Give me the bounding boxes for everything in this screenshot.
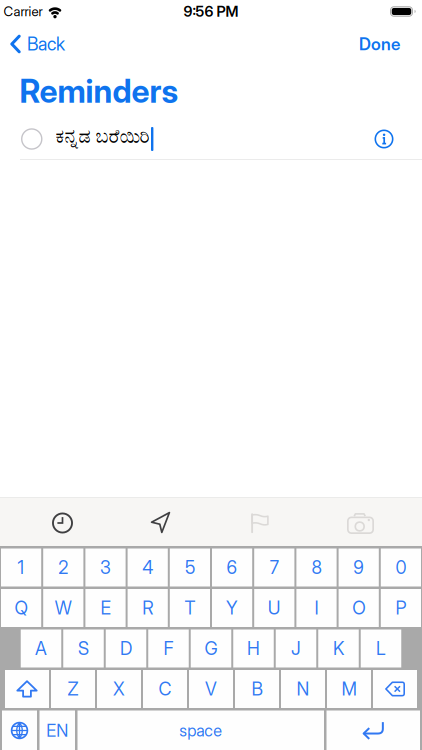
staticText: U: [268, 597, 281, 618]
staticText: C: [158, 678, 171, 699]
button[interactable]: 2: [43, 548, 83, 586]
staticText: B: [251, 678, 262, 699]
button[interactable]: Back: [10, 33, 65, 54]
button[interactable]: [5, 670, 49, 708]
button[interactable]: [52, 512, 73, 533]
staticText: space: [179, 721, 222, 740]
button[interactable]: [2, 710, 37, 750]
staticText: 3: [100, 557, 111, 578]
staticText: I: [314, 597, 318, 618]
staticText: S: [78, 638, 89, 659]
button[interactable]: [150, 511, 172, 534]
button[interactable]: R: [128, 589, 168, 627]
staticText: T: [184, 597, 195, 618]
button[interactable]: 1: [1, 548, 41, 586]
button[interactable]: V: [189, 670, 233, 708]
staticText: 9:56 PM: [183, 3, 238, 20]
staticText: W: [55, 597, 72, 618]
button[interactable]: Done: [359, 34, 400, 54]
staticText: N: [296, 678, 309, 699]
staticText: A: [35, 638, 47, 659]
staticText: Done: [359, 34, 400, 54]
button[interactable]: 6: [212, 548, 252, 586]
button[interactable]: I: [296, 589, 337, 627]
staticText: M: [341, 678, 356, 699]
staticText: P: [395, 597, 406, 618]
staticText: Y: [226, 597, 238, 618]
staticText: Carrier: [3, 4, 42, 19]
button[interactable]: O: [339, 589, 379, 627]
button[interactable]: H: [233, 629, 274, 667]
staticText: Back: [27, 33, 65, 54]
staticText: H: [247, 638, 260, 659]
staticText: J: [291, 638, 301, 659]
button[interactable]: Y: [212, 589, 252, 627]
button[interactable]: X: [97, 670, 141, 708]
button[interactable]: J: [276, 629, 316, 667]
staticText: D: [120, 638, 132, 659]
button[interactable]: 3: [85, 548, 126, 586]
button[interactable]: [249, 512, 269, 534]
button[interactable]: M: [327, 670, 371, 708]
staticText: Z: [67, 678, 78, 699]
button[interactable]: [374, 129, 393, 148]
button[interactable]: [373, 670, 417, 708]
button[interactable]: 9: [339, 548, 379, 586]
staticText: 1: [18, 557, 25, 578]
button[interactable]: C: [143, 670, 187, 708]
staticText: E: [100, 597, 110, 618]
button[interactable]: F: [148, 629, 189, 667]
staticText: O: [352, 597, 365, 618]
button[interactable]: N: [281, 670, 325, 708]
button[interactable]: B: [235, 670, 279, 708]
staticText: X: [113, 678, 125, 699]
button[interactable]: P: [381, 589, 421, 627]
button[interactable]: [326, 710, 420, 750]
button[interactable]: 4: [128, 548, 168, 586]
staticText: ಕನ್ನಡ ಬರೆಯಿರಿ: [55, 128, 149, 146]
button[interactable]: 7: [254, 548, 294, 586]
button[interactable]: D: [106, 629, 146, 667]
button[interactable]: T: [170, 589, 210, 627]
button[interactable]: E: [85, 589, 126, 627]
staticText: L: [376, 638, 386, 659]
staticText: 0: [395, 557, 406, 578]
button[interactable]: G: [191, 629, 231, 667]
staticText: EN: [46, 721, 68, 740]
staticText: F: [163, 638, 173, 659]
staticText: G: [204, 638, 217, 659]
button[interactable]: Z: [51, 670, 95, 708]
staticText: Reminders: [19, 72, 178, 110]
staticText: 9: [353, 557, 364, 578]
button[interactable]: U: [254, 589, 294, 627]
button[interactable]: [347, 513, 374, 534]
staticText: 5: [185, 557, 195, 578]
staticText: R: [142, 597, 153, 618]
staticText: 2: [58, 557, 68, 578]
staticText: K: [333, 638, 344, 659]
staticText: 4: [142, 557, 153, 578]
button[interactable]: S: [63, 629, 104, 667]
button[interactable]: W: [43, 589, 83, 627]
button[interactable]: A: [21, 629, 61, 667]
staticText: Q: [15, 597, 28, 618]
staticText: 8: [311, 557, 321, 578]
button[interactable]: K: [318, 629, 359, 667]
button[interactable]: L: [361, 629, 401, 667]
button[interactable]: Q: [1, 589, 41, 627]
staticText: 6: [227, 557, 238, 578]
button[interactable]: space: [77, 710, 324, 750]
staticText: 7: [270, 557, 279, 578]
button[interactable]: 5: [170, 548, 210, 586]
button[interactable]: EN: [39, 710, 75, 750]
button[interactable]: 8: [296, 548, 337, 586]
button[interactable]: [21, 128, 42, 150]
button[interactable]: 0: [381, 548, 421, 586]
staticText: V: [205, 678, 217, 699]
